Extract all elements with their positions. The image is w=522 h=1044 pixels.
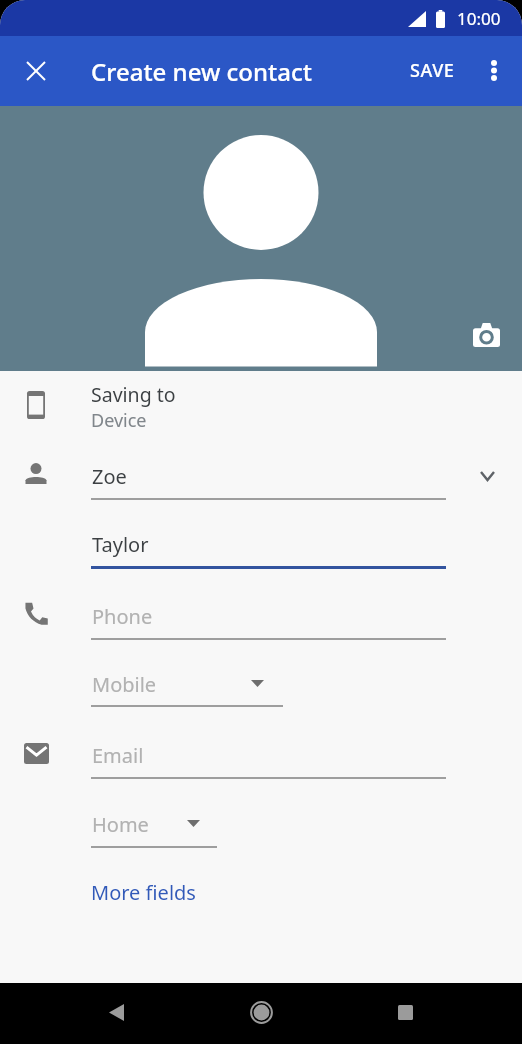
button[interactable]: Back xyxy=(92,988,141,1037)
button[interactable]: More fields xyxy=(86,875,201,910)
staticText: Zoe xyxy=(92,463,127,490)
button[interactable]: Taylor xyxy=(91,520,446,569)
staticText: Email xyxy=(92,742,144,769)
button[interactable]: Recent apps xyxy=(381,988,430,1037)
staticText: Device xyxy=(91,408,147,433)
staticText: Phone xyxy=(92,603,153,630)
button[interactable]: Expand name xyxy=(459,448,515,504)
staticText: More fields xyxy=(91,879,196,906)
button[interactable]: Change photo xyxy=(470,319,502,351)
staticText: Taylor xyxy=(92,531,149,558)
button[interactable]: Home xyxy=(91,802,217,848)
staticText: Home xyxy=(92,811,149,838)
button[interactable]: Close xyxy=(12,47,60,95)
button[interactable]: Zoe xyxy=(91,452,446,500)
staticText: Mobile xyxy=(92,671,157,698)
button[interactable]: Email xyxy=(91,731,446,779)
button[interactable]: Saving to xyxy=(0,377,522,433)
button[interactable]: Phone xyxy=(91,592,446,640)
button[interactable]: Mobile xyxy=(91,662,283,707)
staticText: Create new contact xyxy=(91,55,312,88)
button[interactable]: SAVE xyxy=(404,50,461,91)
staticText: SAVE xyxy=(410,58,455,83)
staticText: Saving to xyxy=(91,381,176,408)
staticText: 10:00 xyxy=(457,7,501,30)
button[interactable]: More options xyxy=(472,48,516,92)
button[interactable]: Home xyxy=(237,988,286,1037)
